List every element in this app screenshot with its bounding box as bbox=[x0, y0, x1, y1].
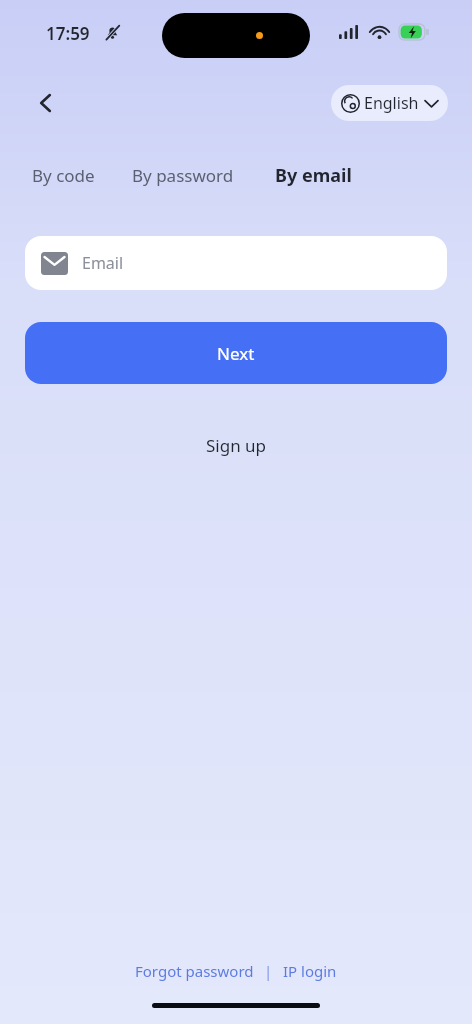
button[interactable]: By email bbox=[275, 157, 352, 194]
button[interactable]: English bbox=[331, 85, 448, 121]
button[interactable]: IP login bbox=[279, 955, 341, 987]
staticText: 17:59 bbox=[46, 22, 90, 45]
staticText: | bbox=[264, 961, 273, 981]
staticText: By code bbox=[32, 164, 95, 187]
staticText: Email bbox=[82, 252, 124, 274]
button[interactable]: Forgot password bbox=[131, 955, 258, 987]
staticText: Forgot password bbox=[135, 961, 254, 981]
button[interactable]: By code bbox=[32, 158, 95, 193]
button[interactable]: Email bbox=[25, 236, 447, 290]
staticText: By email bbox=[275, 163, 352, 188]
button[interactable]: Back bbox=[22, 80, 70, 126]
staticText: Sign up bbox=[206, 434, 267, 457]
button[interactable]: Next bbox=[25, 322, 447, 384]
button[interactable]: By password bbox=[132, 158, 234, 193]
staticText: IP login bbox=[283, 961, 337, 981]
staticText: English bbox=[364, 92, 419, 114]
staticText: Next bbox=[217, 342, 255, 365]
staticText: By password bbox=[132, 164, 234, 187]
button[interactable]: Sign up bbox=[188, 428, 285, 463]
